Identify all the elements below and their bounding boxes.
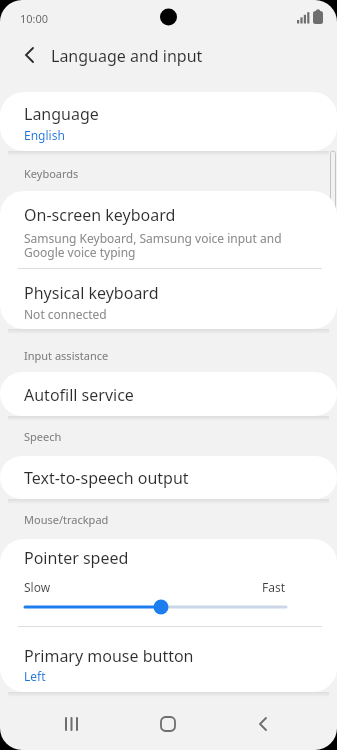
- staticText: Primary mouse button: [24, 645, 194, 667]
- staticText: On-screen keyboard: [24, 204, 176, 226]
- button[interactable]: [144, 702, 192, 746]
- staticText: Text-to-speech output: [24, 467, 189, 489]
- button[interactable]: Language: [0, 92, 337, 151]
- staticText: 10:00: [20, 11, 49, 26]
- staticText: Pointer speed: [24, 547, 129, 569]
- staticText: Fast: [262, 579, 286, 595]
- staticText: English: [24, 127, 65, 143]
- button[interactable]: Autofill service: [0, 372, 337, 416]
- staticText: Slow: [24, 579, 51, 595]
- staticText: Language: [24, 103, 99, 125]
- staticText: Language and input: [51, 45, 203, 67]
- button[interactable]: Pointer speed: [0, 539, 337, 692]
- staticText: Autofill service: [24, 384, 134, 406]
- staticText: Mouse/trackpad: [24, 512, 109, 527]
- staticText: Samsung Keyboard, Samsung voice input an…: [24, 230, 282, 261]
- staticText: Input assistance: [24, 348, 109, 363]
- button[interactable]: [238, 702, 286, 746]
- staticText: Speech: [24, 429, 62, 444]
- staticText: Left: [24, 668, 46, 684]
- button[interactable]: [14, 42, 42, 70]
- staticText: Physical keyboard: [24, 282, 159, 304]
- button[interactable]: Text-to-speech output: [0, 456, 337, 499]
- button[interactable]: [48, 702, 96, 746]
- staticText: Not connected: [24, 306, 107, 322]
- staticText: Keyboards: [24, 166, 79, 181]
- button[interactable]: On-screen keyboard: [0, 191, 337, 329]
